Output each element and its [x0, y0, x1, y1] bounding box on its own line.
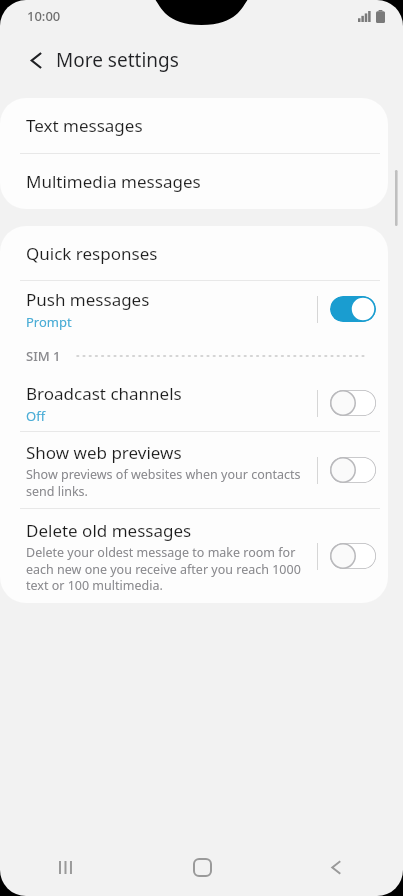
staticText: Multimedia messages: [26, 170, 201, 193]
staticText: Push messages: [26, 288, 150, 311]
other: Push messages: [318, 281, 388, 337]
other: Show web previews: [318, 432, 388, 508]
staticText: Off: [26, 407, 46, 425]
other: Broadcast channels: [318, 375, 388, 431]
other: Delete old messages: [318, 509, 388, 603]
button[interactable]: Text messages: [0, 98, 388, 153]
staticText: SIM 1: [26, 347, 61, 365]
button[interactable]: Home: [135, 838, 269, 896]
staticText: Prompt: [26, 313, 72, 331]
button[interactable]: Push messages: [0, 288, 317, 331]
button[interactable]: [330, 457, 376, 483]
button[interactable]: Delete old messages: [0, 519, 317, 593]
staticText: More settings: [56, 47, 179, 73]
button[interactable]: [330, 296, 376, 322]
button[interactable]: Show web previews: [0, 441, 317, 499]
button[interactable]: [330, 543, 376, 569]
button[interactable]: Quick responses: [0, 226, 388, 280]
staticText: Delete old messages: [26, 519, 192, 542]
button[interactable]: Multimedia messages: [0, 154, 388, 209]
button[interactable]: Broadcast channels: [0, 382, 317, 425]
staticText: Delete your oldest message to make room …: [26, 544, 301, 593]
staticText: Show web previews: [26, 441, 182, 464]
button[interactable]: [330, 390, 376, 416]
button[interactable]: Recents: [0, 838, 135, 896]
staticText: Quick responses: [26, 242, 158, 265]
staticText: Text messages: [26, 114, 143, 137]
staticText: 10:00: [27, 7, 61, 25]
staticText: Broadcast channels: [26, 382, 182, 405]
button[interactable]: Back: [269, 838, 403, 896]
staticText: Show previews of websites when your cont…: [26, 466, 301, 499]
button[interactable]: Back: [14, 38, 58, 82]
